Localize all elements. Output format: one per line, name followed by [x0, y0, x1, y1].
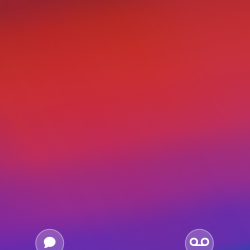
button[interactable]: Voicemail: [185, 229, 213, 250]
button[interactable]: Message: [36, 229, 64, 250]
